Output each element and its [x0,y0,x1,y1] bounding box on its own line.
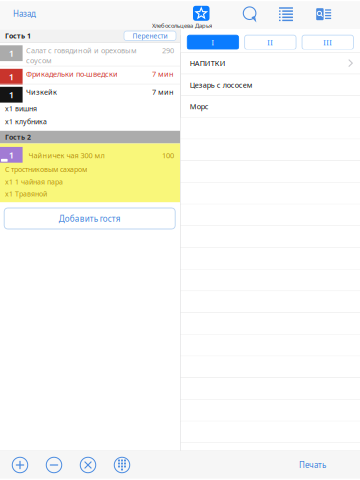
staticText: 7 мин [152,87,174,97]
staticText: Чизкейк [26,87,57,97]
button[interactable]: III [302,35,353,49]
staticText: Печать [299,460,326,470]
button[interactable]: Назад [0,1,48,27]
staticText: С тростниковым сахаром [5,165,87,174]
button[interactable]: Сообщения [239,4,261,24]
button[interactable]: Печать [289,451,336,479]
button[interactable]: Добавить позицию [3,451,37,479]
button[interactable]: Перенести [124,31,176,41]
staticText: Хлебосольцева Дарья [152,21,212,29]
staticText: Чайничек чая 300 мл [29,150,105,160]
button[interactable]: I [187,35,239,49]
staticText: Цезарь с лососем [190,80,253,90]
button[interactable]: Список заказов [276,4,296,24]
staticText: 1 [9,148,14,161]
button[interactable]: Морс [181,96,360,118]
staticText: НАПИТКИ [190,58,226,68]
button[interactable]: II [245,35,296,49]
button[interactable]: Цезарь с лососем [181,74,360,96]
staticText: III [323,37,332,47]
staticText: Добавить гостя [59,213,121,224]
staticText: II [267,37,273,47]
staticText: Морс [190,101,209,111]
staticText: 100 [162,150,174,160]
staticText: x1 1 чайная пара [5,177,63,187]
staticText: x1 вишня [5,104,37,113]
button[interactable]: Отменить позицию [71,451,105,479]
button[interactable]: 1 [0,84,180,102]
button[interactable]: 1 [0,43,180,66]
staticText: 1 [9,47,14,59]
button[interactable]: Справочник [314,4,334,24]
button[interactable]: Клавиатура [105,451,139,479]
staticText: 7 мин [152,69,174,79]
staticText: 290 [162,45,174,55]
button[interactable]: 1 [0,143,180,202]
staticText: Назад [13,8,36,19]
button[interactable]: НАПИТКИ [181,52,360,74]
staticText: Фрикадельки по-шведски [26,69,118,79]
staticText: I [211,37,214,47]
staticText: Салат с говядиной и ореховым соусом [26,45,137,65]
staticText: 1 [9,88,14,101]
staticText: x1 Травяной [5,189,47,199]
button[interactable]: Добавить гостя [4,208,175,229]
staticText: Перенести [132,31,167,40]
staticText: x1 клубника [5,117,47,126]
button[interactable]: Убрать позицию [37,451,71,479]
staticText: Гость 1 [5,31,31,40]
staticText: Гость 2 [5,132,31,142]
staticText: 1 [9,70,14,83]
button[interactable]: 1 [0,66,180,84]
